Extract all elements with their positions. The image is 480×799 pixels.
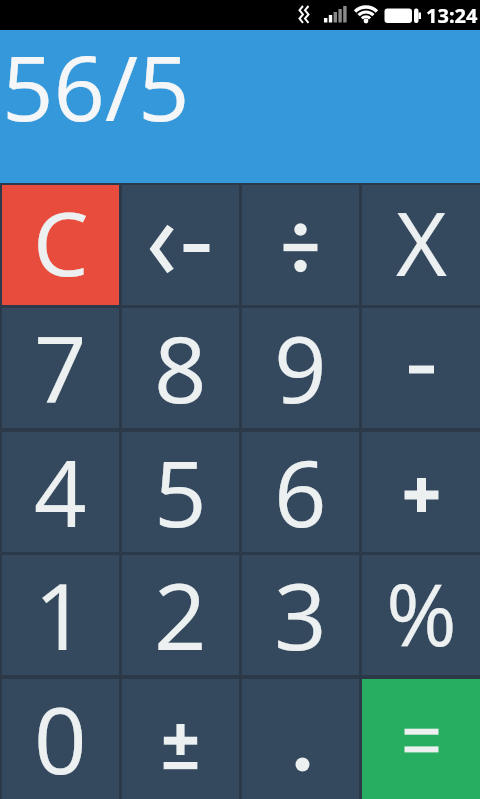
staticText: 7 [34, 305, 87, 425]
staticText: 4 [34, 429, 87, 549]
staticText: 3 [274, 552, 327, 672]
staticText: 1 [34, 552, 87, 672]
staticText: X [396, 182, 447, 302]
staticText: 56/5 [2, 25, 190, 148]
staticText: 6 [274, 429, 327, 549]
staticText: 2 [154, 552, 207, 672]
staticText: 8 [154, 305, 207, 425]
staticText: 13:24 [426, 2, 478, 29]
staticText: 5 [154, 429, 207, 549]
staticText: 9 [274, 305, 327, 425]
staticText: % [386, 554, 457, 671]
staticText: C [33, 182, 89, 302]
staticText: 0 [34, 676, 87, 796]
